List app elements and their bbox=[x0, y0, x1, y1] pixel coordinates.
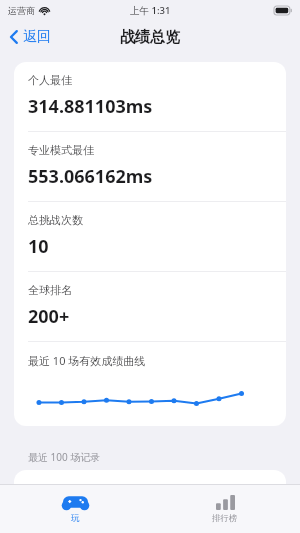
staticText: 上午 1:31 bbox=[130, 4, 171, 17]
staticText: 战绩总览 bbox=[120, 28, 180, 47]
staticText: 运营商 bbox=[8, 5, 35, 16]
staticText: 200+ bbox=[28, 304, 70, 329]
button[interactable]: 返回 bbox=[0, 22, 63, 52]
staticText: 返回 bbox=[23, 28, 51, 46]
staticText: 总挑战次数 bbox=[28, 213, 83, 227]
staticText: 314.881103ms bbox=[28, 94, 153, 119]
staticText: 10 bbox=[28, 234, 49, 259]
staticText: 排行榜 bbox=[212, 513, 238, 524]
staticText: 最近 100 场记录 bbox=[28, 450, 101, 464]
button[interactable]: 专业模式最佳 bbox=[14, 132, 286, 201]
staticText: 4393.07 bbox=[28, 487, 92, 510]
staticText: 553.066162ms bbox=[28, 164, 153, 189]
staticText: 玩 bbox=[71, 513, 80, 524]
button[interactable]: 全球排名 bbox=[14, 272, 286, 341]
button[interactable]: 玩 bbox=[0, 485, 150, 533]
button[interactable]: 排行榜 bbox=[150, 485, 300, 533]
staticText: 娱乐模式 bbox=[220, 492, 272, 508]
button[interactable]: 娱乐模式 bbox=[14, 470, 286, 510]
staticText: 最近 10 场有效成绩曲线 bbox=[28, 353, 146, 368]
staticText: 全球排名 bbox=[28, 283, 72, 297]
button[interactable]: 总挑战次数 bbox=[14, 202, 286, 271]
staticText: 专业模式最佳 bbox=[28, 143, 94, 157]
button[interactable]: 个人最佳 bbox=[14, 62, 286, 131]
staticText: 个人最佳 bbox=[28, 73, 72, 87]
